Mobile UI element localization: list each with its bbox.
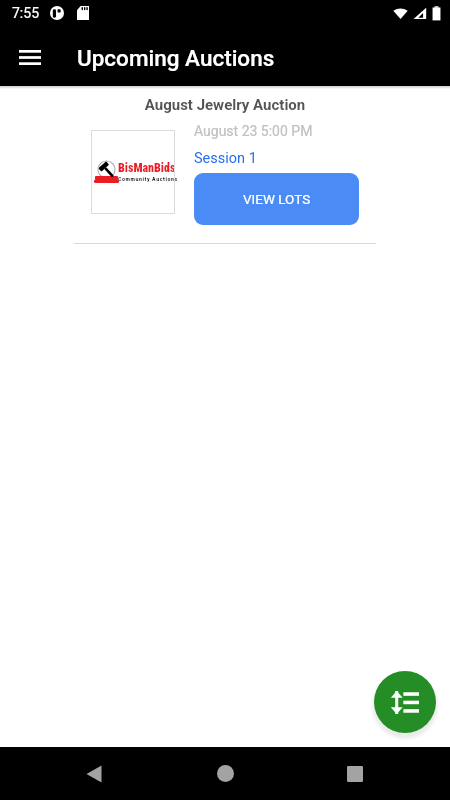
staticText: Upcoming Auctions [77, 45, 275, 71]
staticText: August 23 5:00 PM [194, 123, 313, 139]
staticText: 7:55 [12, 5, 39, 21]
staticText: August Jewelry Auction [0, 96, 450, 114]
staticText: BisManBids [118, 161, 176, 175]
button[interactable]: VIEW LOTS [194, 173, 359, 225]
button[interactable]: Recent apps [334, 753, 375, 794]
button[interactable]: Session 1 [194, 150, 257, 167]
button[interactable]: Open navigation menu [8, 35, 52, 79]
button[interactable]: Back [73, 753, 114, 794]
staticText: Community Auctions [118, 175, 178, 182]
button[interactable]: Home [205, 753, 246, 794]
button[interactable]: Sort [374, 671, 436, 733]
staticText: VIEW LOTS [243, 191, 311, 207]
